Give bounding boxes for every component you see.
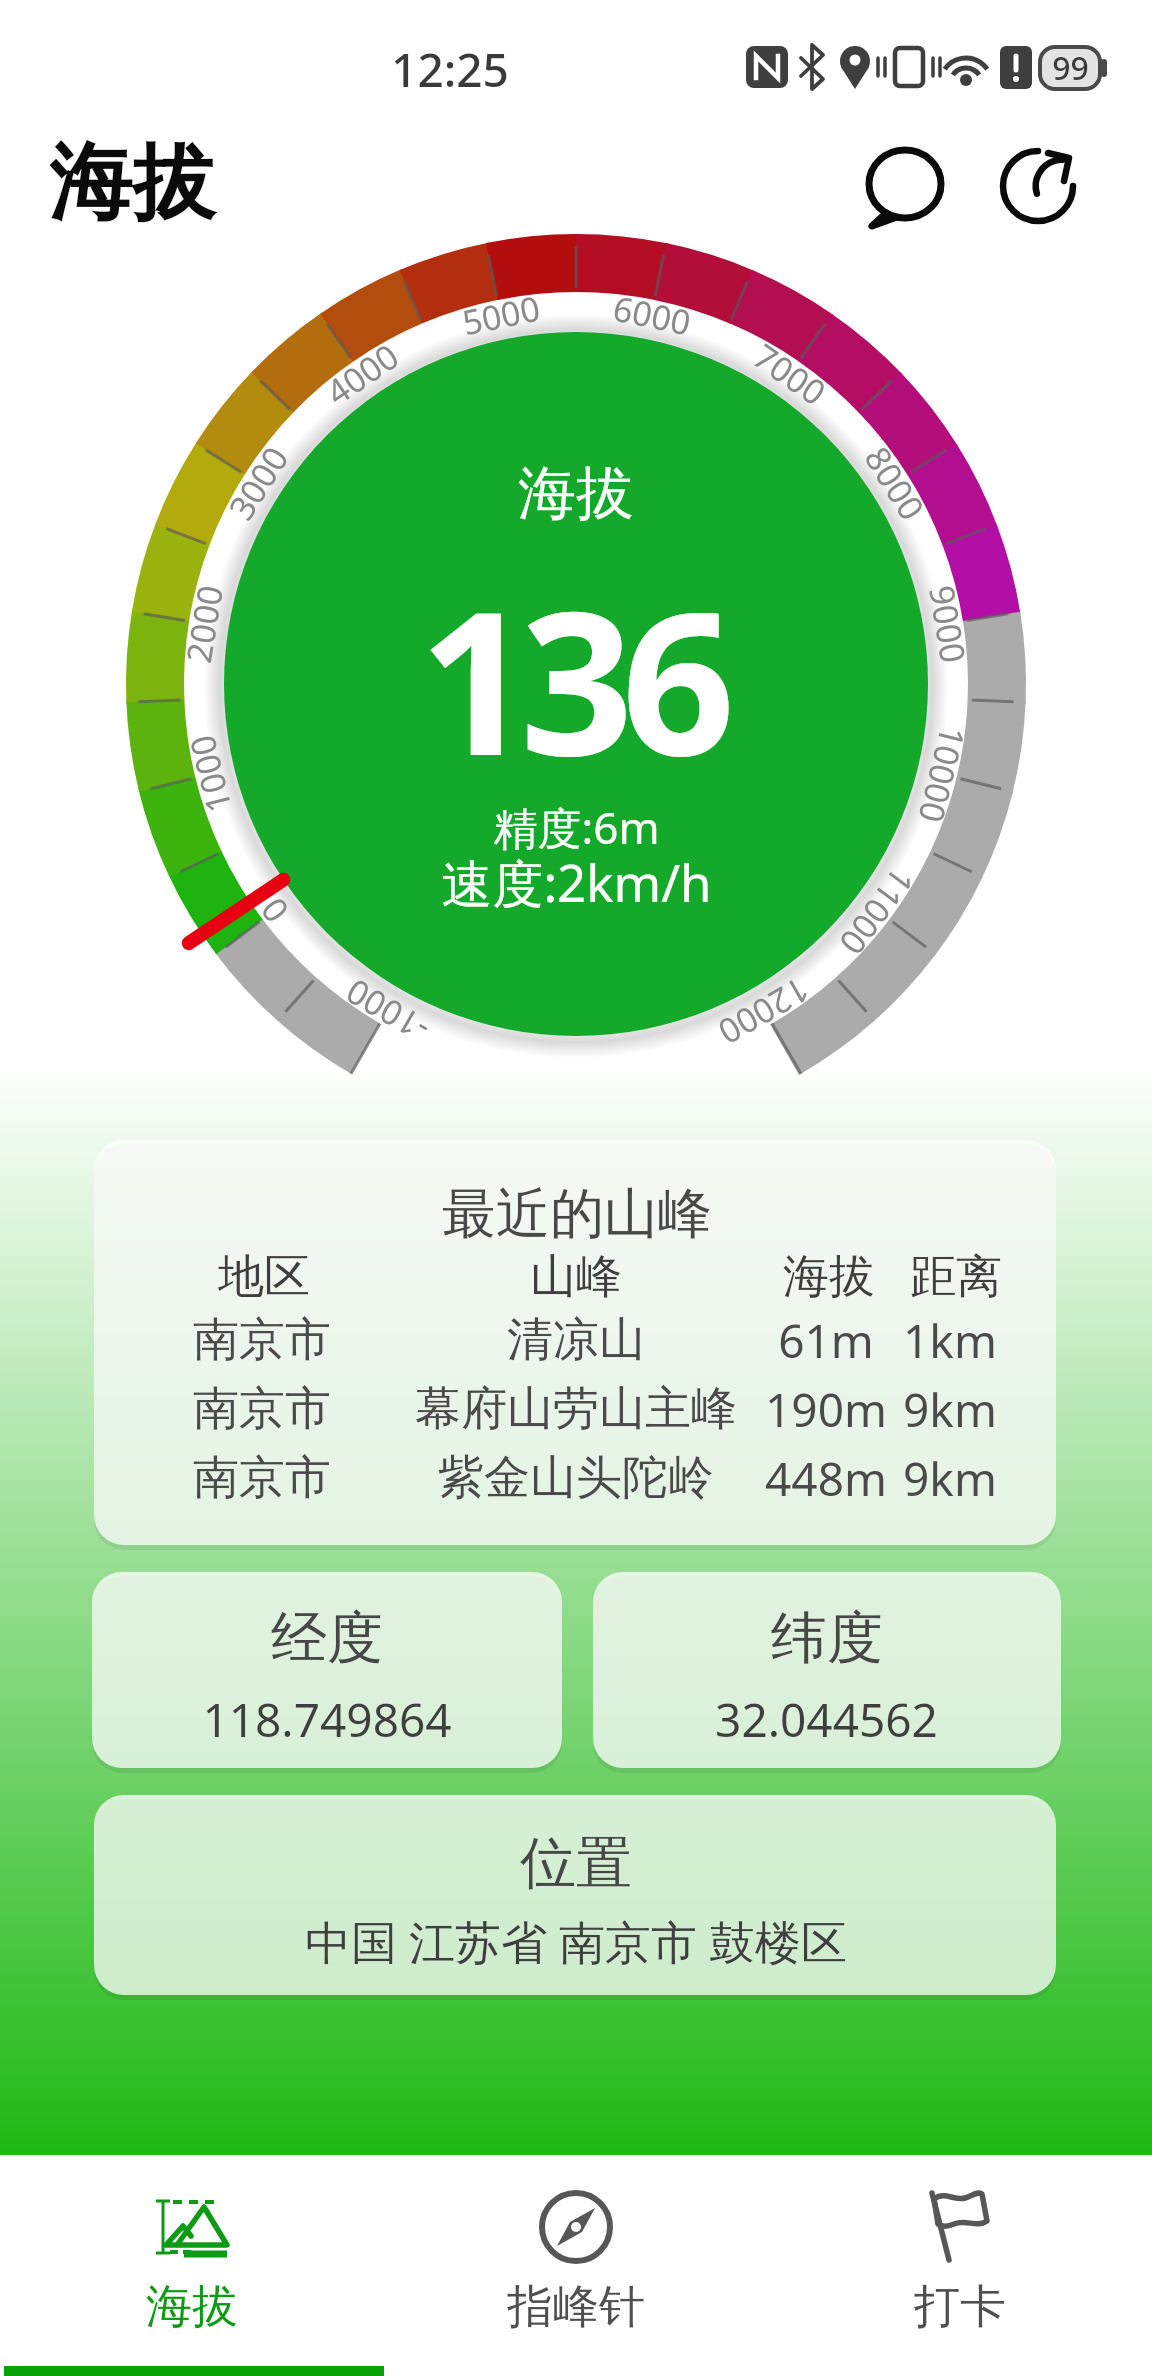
staticText: 速度:2km/h [441,847,712,917]
staticText: 清凉山 [507,1311,645,1369]
staticText: 4000 [317,333,407,415]
staticText: 精度:6m [493,797,660,857]
staticText: 8000 [855,438,935,528]
button[interactable] [384,2155,768,2376]
button[interactable] [94,1795,1056,1995]
staticText: 海拔 [49,131,215,236]
staticText: 紫金山头陀岭 [438,1449,714,1507]
staticText: 32.044562 [715,1688,938,1751]
staticText: 位置 [520,1828,632,1899]
staticText: 5000 [458,285,544,345]
staticText: 海拔 [783,1248,875,1306]
staticText: 7000 [745,333,835,415]
staticText: 海拔 [518,457,634,530]
staticText: 南京市 [193,1311,331,1369]
button[interactable] [0,2155,384,2376]
button[interactable] [860,140,950,230]
staticText: 0 [250,889,299,932]
staticText: 打卡 [914,2278,1006,2336]
staticText: 1km [903,1309,997,1372]
staticText: 地区 [218,1248,310,1306]
staticText: 6000 [609,285,695,345]
staticText: 1000 [178,731,242,817]
button[interactable] [995,140,1085,230]
staticText: 9km [903,1378,997,1441]
staticText: 9000 [919,582,977,666]
staticText: 9km [903,1447,997,1510]
staticText: 中国 江苏省 南京市 鼓楼区 [305,1910,847,1973]
staticText: 12000 [710,967,818,1056]
staticText: 经度 [271,1603,383,1674]
button[interactable] [768,2155,1152,2376]
staticText: 61m [778,1309,874,1372]
staticText: 118.749864 [202,1688,452,1751]
staticText: 山峰 [530,1248,622,1306]
staticText: 12:25 [391,38,509,101]
staticText: 2000 [175,582,233,666]
staticText: -1000 [337,969,438,1053]
staticText: 纬度 [771,1603,883,1674]
button[interactable] [593,1572,1061,1768]
staticText: 幕府山劳山主峰 [415,1380,737,1438]
staticText: 海拔 [146,2278,238,2336]
staticText: 指峰针 [507,2278,645,2336]
staticText: 99 [1052,46,1089,90]
staticText: 11000 [829,858,925,964]
staticText: 南京市 [193,1380,331,1438]
staticText: 448m [765,1447,887,1510]
staticText: 3000 [218,438,298,528]
button[interactable] [92,1572,562,1768]
staticText: 10000 [908,721,976,828]
staticText: 距离 [910,1248,1002,1306]
staticText: 最近的山峰 [442,1180,712,1248]
staticText: 南京市 [193,1449,331,1507]
staticText: 136 [419,543,723,813]
staticText: 190m [765,1378,887,1441]
button[interactable] [94,1140,1056,1545]
